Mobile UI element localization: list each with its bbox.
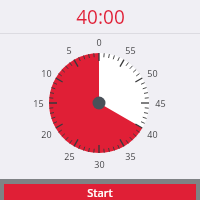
staticText: 0 bbox=[96, 36, 102, 48]
staticText: 40:00 bbox=[76, 4, 125, 30]
button[interactable]: Start bbox=[4, 184, 196, 200]
staticText: Start bbox=[87, 185, 113, 200]
staticText: 45 bbox=[155, 97, 166, 109]
staticText: 40 bbox=[147, 128, 158, 140]
staticText: 5 bbox=[66, 44, 72, 56]
staticText: 15 bbox=[33, 97, 44, 109]
staticText: 30 bbox=[94, 158, 105, 170]
staticText: 10 bbox=[41, 67, 52, 79]
staticText: 25 bbox=[64, 150, 75, 162]
staticText: 35 bbox=[125, 150, 136, 162]
button[interactable]: Timer dial, 40 minutes bbox=[0, 0, 200, 200]
staticText: 55 bbox=[125, 44, 136, 56]
staticText: 50 bbox=[147, 67, 158, 79]
staticText: 20 bbox=[41, 128, 52, 140]
button[interactable]: 40:00 bbox=[0, 0, 200, 33]
